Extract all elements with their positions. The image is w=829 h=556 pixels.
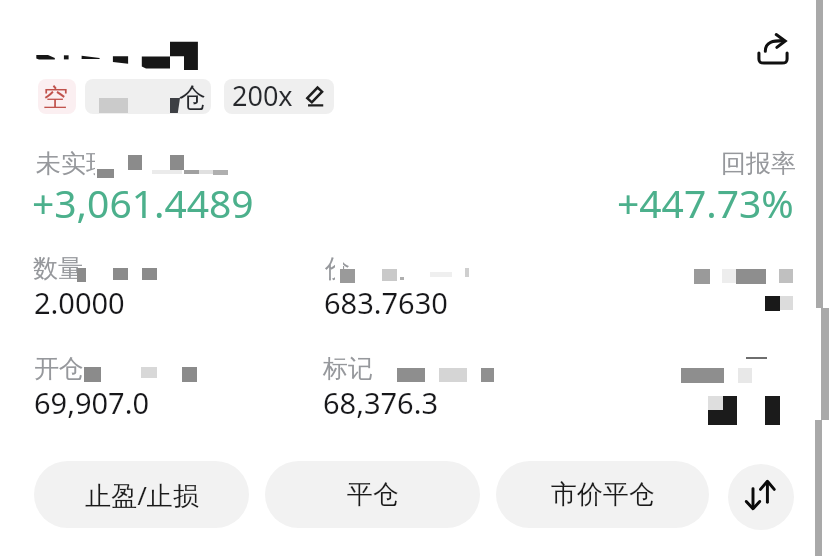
staticText: 止盈/止损 [85, 477, 199, 513]
staticText: +447.73% [617, 176, 794, 229]
staticText: 平仓 [347, 478, 399, 511]
button[interactable]: Reverse position [728, 464, 794, 530]
staticText: 68,376.3 [323, 383, 439, 422]
staticText: 开仓 [34, 353, 84, 384]
staticText: 69,907.0 [34, 383, 150, 422]
staticText: 标记 [323, 353, 373, 384]
staticText: 2.0000 [34, 283, 125, 322]
button[interactable]: 200x [224, 79, 334, 114]
button[interactable]: 市价平仓 [496, 461, 709, 528]
staticText: 市价平仓 [551, 478, 655, 511]
staticText: +3,061.4489 [32, 176, 254, 229]
staticText: 683.7630 [324, 283, 448, 322]
staticText: 价 [325, 253, 350, 284]
staticText: 回报率 [721, 148, 796, 179]
button[interactable]: 止盈/止损 [34, 461, 249, 528]
button[interactable]: 平仓 [265, 461, 480, 528]
button[interactable]: Share [742, 17, 804, 79]
button[interactable]: 空 [38, 79, 76, 114]
staticText: 空 [43, 82, 68, 113]
staticText: 200x [232, 79, 293, 112]
staticText: 未实现 [36, 148, 111, 179]
staticText: 数量 [33, 253, 83, 284]
button[interactable]: 仓 [85, 79, 211, 114]
staticText: 仓 [179, 81, 206, 114]
